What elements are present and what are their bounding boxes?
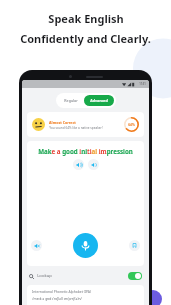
staticText: You sound 64% like a native speaker! <box>49 126 103 130</box>
staticText: International Phonetic Alphabet (IPA) <box>32 289 91 294</box>
staticText: Lookup <box>37 273 52 279</box>
button[interactable]: Bookmark <box>129 240 140 251</box>
staticText: Confidently and Clearly. <box>20 31 151 46</box>
button[interactable]: Lookup <box>22 270 149 282</box>
staticText: Make a good initial impression <box>38 147 133 155</box>
button[interactable]: International Phonetic Alphabet (IPA) <box>27 285 144 305</box>
staticText: Almost Correct <box>49 120 76 125</box>
button[interactable]: Play audio <box>73 159 84 170</box>
staticText: Regular <box>64 98 78 103</box>
button[interactable]: Regular <box>58 95 84 106</box>
button[interactable]: Lookup toggle <box>128 272 142 280</box>
button[interactable]: Mute <box>31 240 42 251</box>
staticText: Advanced <box>90 98 108 103</box>
staticText: /meɪk ə ɡʊd ɪˈnɪʃ(ə)l ɪmˈprɛʃ(ə)n/ <box>32 296 82 301</box>
staticText: Speak English <box>48 11 124 26</box>
staticText: 64% <box>128 123 135 127</box>
button[interactable]: Slow playback <box>88 159 99 170</box>
button[interactable]: Advanced <box>84 95 114 106</box>
staticText: 11:31 <box>139 82 146 86</box>
button[interactable]: Record <box>73 233 98 258</box>
button[interactable]: Almost Correct <box>27 112 144 137</box>
